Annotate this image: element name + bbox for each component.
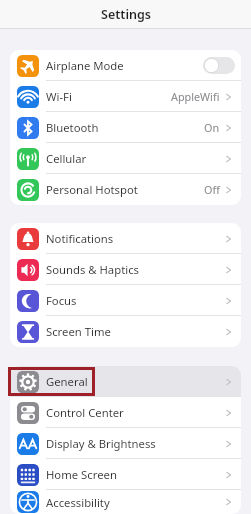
staticText: Off xyxy=(204,182,220,197)
staticText: Wi-Fi xyxy=(46,89,72,104)
button[interactable]: Home Screen xyxy=(10,459,241,490)
button[interactable]: Cellular xyxy=(10,143,241,174)
staticText: Bluetooth xyxy=(46,120,99,135)
staticText: Airplane Mode xyxy=(46,58,124,73)
staticText: AppleWifi xyxy=(171,89,220,104)
staticText: On xyxy=(204,120,220,135)
button[interactable]: Bluetooth xyxy=(10,112,241,143)
staticText: Accessibility xyxy=(46,495,110,510)
staticText: Sounds & Haptics xyxy=(46,262,139,277)
staticText: Control Center xyxy=(46,405,124,420)
staticText: Screen Time xyxy=(46,324,111,339)
button[interactable]: Accessibility xyxy=(10,490,241,514)
staticText: Personal Hotspot xyxy=(46,182,138,197)
button[interactable]: Personal Hotspot xyxy=(10,174,241,205)
button[interactable]: Focus xyxy=(10,285,241,316)
staticText: Notifications xyxy=(46,231,114,246)
button[interactable]: Notifications xyxy=(10,223,241,254)
button[interactable]: Screen Time xyxy=(10,316,241,347)
staticText: Settings xyxy=(101,6,151,23)
staticText: Display & Brightness xyxy=(46,436,156,451)
staticText: Home Screen xyxy=(46,467,117,482)
other: Airplane Mode toggle xyxy=(203,57,235,74)
button[interactable]: Wi-Fi xyxy=(10,81,241,112)
button[interactable]: Control Center xyxy=(10,397,241,428)
button[interactable]: Airplane Mode xyxy=(10,50,241,81)
button[interactable]: General xyxy=(10,366,241,397)
staticText: General xyxy=(46,374,88,389)
staticText: Focus xyxy=(46,293,77,308)
staticText: Cellular xyxy=(46,151,87,166)
button[interactable]: Display & Brightness xyxy=(10,428,241,459)
button[interactable]: Sounds & Haptics xyxy=(10,254,241,285)
